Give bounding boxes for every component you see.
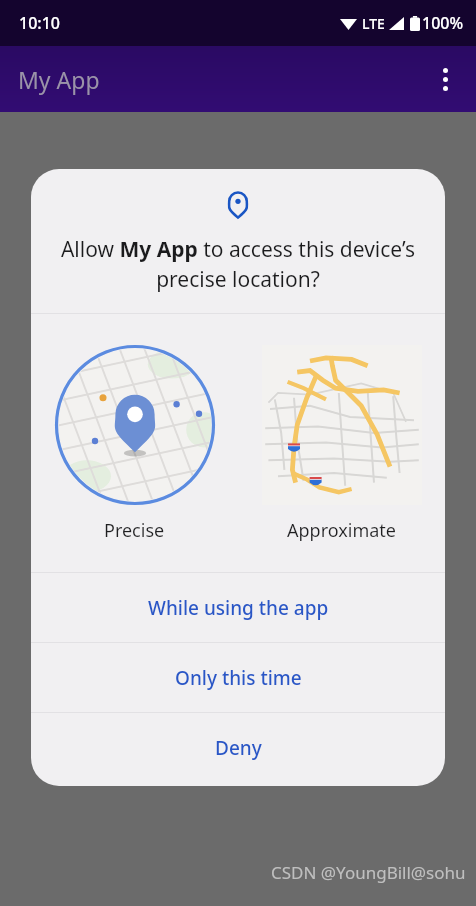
staticText: Only this time — [175, 665, 302, 691]
staticText: While using the app — [148, 595, 329, 621]
staticText: 100% — [422, 12, 464, 34]
button[interactable]: Only this time — [31, 643, 445, 712]
staticText: Precise — [104, 518, 165, 543]
staticText: Allow My App to access this device’s pre… — [53, 235, 423, 293]
button[interactable]: While using the app — [31, 573, 445, 642]
button[interactable]: Deny — [31, 713, 445, 782]
staticText: CSDN @YoungBill@sohu — [271, 861, 466, 884]
button[interactable]: More options — [423, 57, 467, 101]
button[interactable]: Precise — [31, 314, 238, 572]
staticText: Deny — [215, 735, 262, 761]
staticText: LTE — [362, 14, 385, 33]
button[interactable]: Approximate — [238, 314, 445, 572]
staticText: 10:10 — [19, 12, 60, 34]
staticText: My App — [18, 64, 100, 95]
staticText: Approximate — [287, 518, 396, 543]
